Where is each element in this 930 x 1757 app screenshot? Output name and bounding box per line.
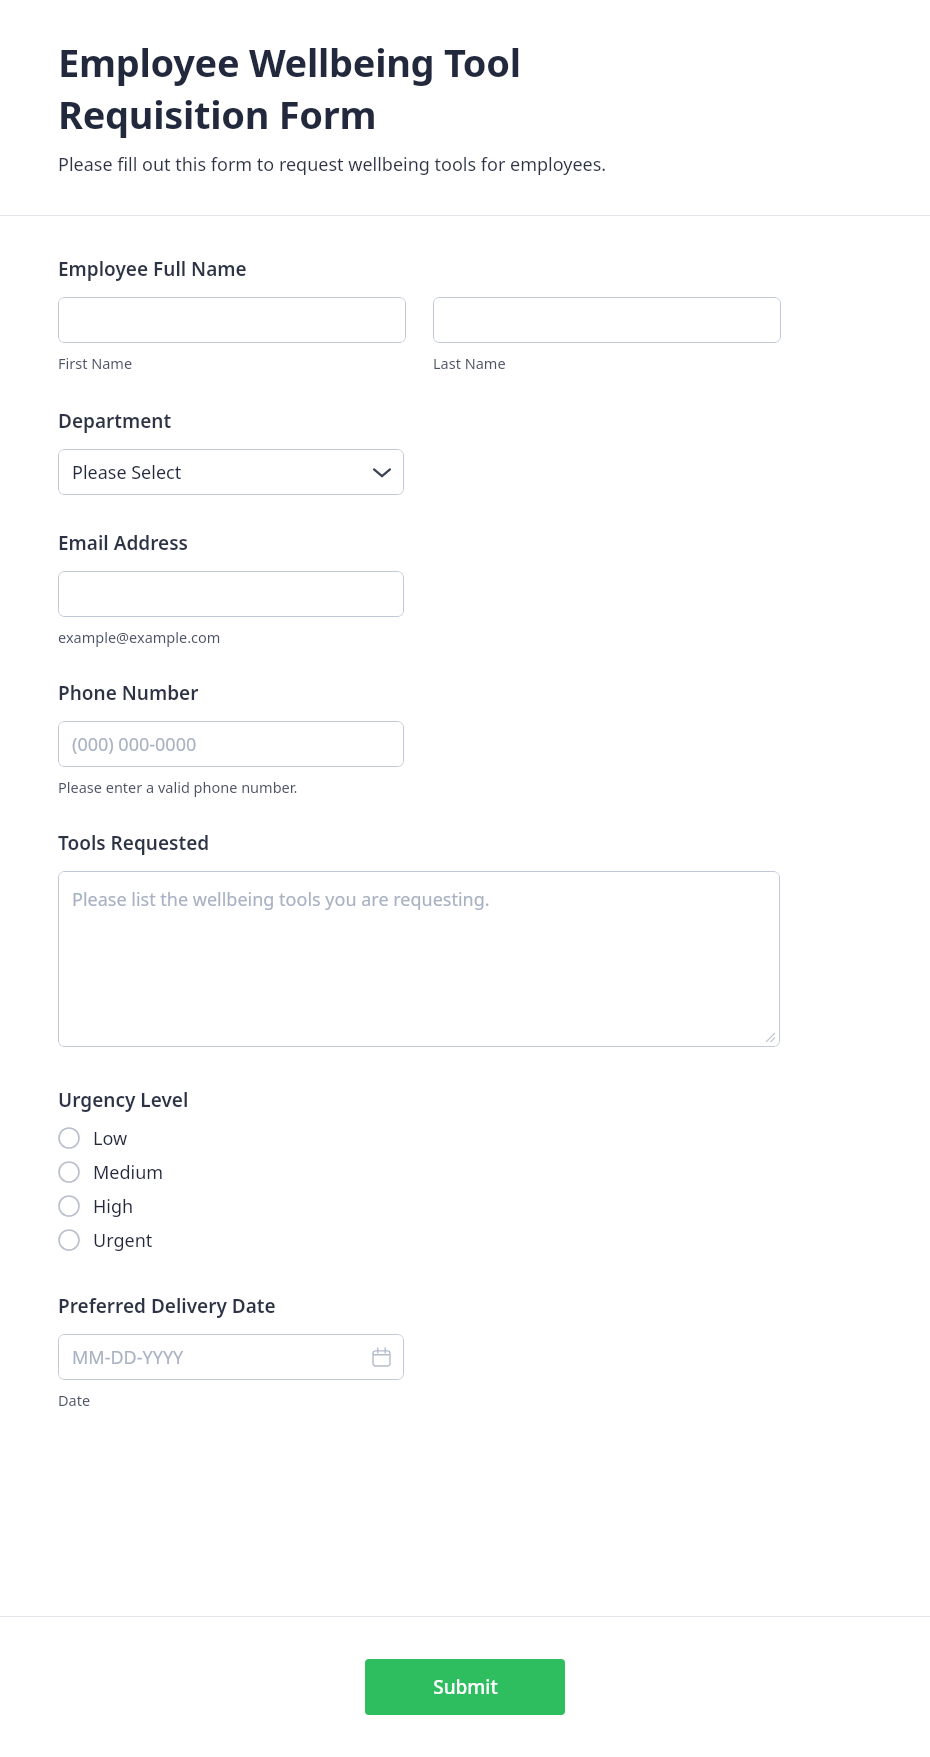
staticText: Employee Wellbeing Tool Requisition Form [58, 36, 718, 140]
staticText: Please list the wellbeing tools you are … [72, 887, 490, 912]
staticText: Phone Number [58, 680, 199, 706]
staticText: Medium [93, 1160, 164, 1185]
staticText: example@example.com [58, 627, 221, 647]
button[interactable]: First Name [58, 297, 406, 343]
staticText: Submit [433, 1674, 498, 1700]
button[interactable]: Urgent [58, 1223, 153, 1257]
button[interactable]: Phone Number [58, 721, 404, 767]
button[interactable]: Email Address [58, 571, 404, 617]
staticText: Employee Full Name [58, 256, 247, 282]
staticText: Please enter a valid phone number. [58, 777, 298, 797]
staticText: Please fill out this form to request wel… [58, 152, 607, 177]
button[interactable]: Please Select [58, 449, 404, 495]
button[interactable]: Last Name [433, 297, 781, 343]
staticText: (000) 000-0000 [72, 732, 197, 757]
staticText: Department [58, 408, 172, 434]
staticText: Low [93, 1126, 128, 1151]
staticText: Please Select [72, 460, 182, 485]
button[interactable]: Low [58, 1121, 128, 1155]
button[interactable]: High [58, 1189, 134, 1223]
staticText: Preferred Delivery Date [58, 1293, 276, 1319]
staticText: High [93, 1194, 134, 1219]
staticText: Date [58, 1390, 91, 1410]
staticText: Email Address [58, 530, 188, 556]
button[interactable]: Preferred Delivery Date [58, 1334, 404, 1380]
button[interactable]: Tools Requested [58, 871, 780, 1047]
staticText: Last Name [433, 353, 506, 373]
staticText: Urgency Level [58, 1087, 189, 1113]
staticText: Tools Requested [58, 830, 210, 856]
staticText: MM-DD-YYYY [72, 1345, 184, 1370]
button[interactable]: Medium [58, 1155, 164, 1189]
button[interactable]: Submit [365, 1659, 565, 1715]
staticText: First Name [58, 353, 133, 373]
staticText: Urgent [93, 1228, 153, 1253]
